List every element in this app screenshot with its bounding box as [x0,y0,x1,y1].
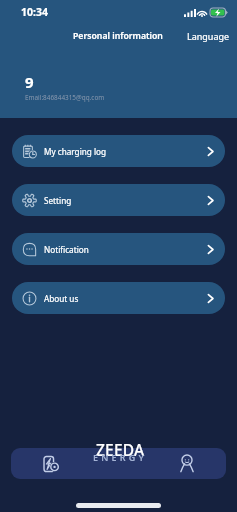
button[interactable]: Profile [164,448,210,479]
staticText: Email:846844315@qq.com [25,93,105,102]
staticText: ZEEDA [96,439,145,460]
staticText: 9 [25,72,34,92]
staticText: Language [187,30,230,42]
staticText: 10:34 [21,5,48,19]
button[interactable]: Setting [12,184,225,216]
button[interactable]: My charging log [12,135,225,167]
staticText: Setting [44,195,72,206]
button[interactable]: About us [12,282,225,314]
button[interactable]: Language [178,26,237,46]
staticText: About us [44,293,79,304]
staticText: ENERGY [93,451,148,463]
button[interactable]: Charging [28,448,74,479]
button[interactable]: Notification [12,233,225,265]
staticText: Personal information [73,30,163,42]
staticText: Notification [44,244,89,255]
staticText: My charging log [44,146,107,157]
